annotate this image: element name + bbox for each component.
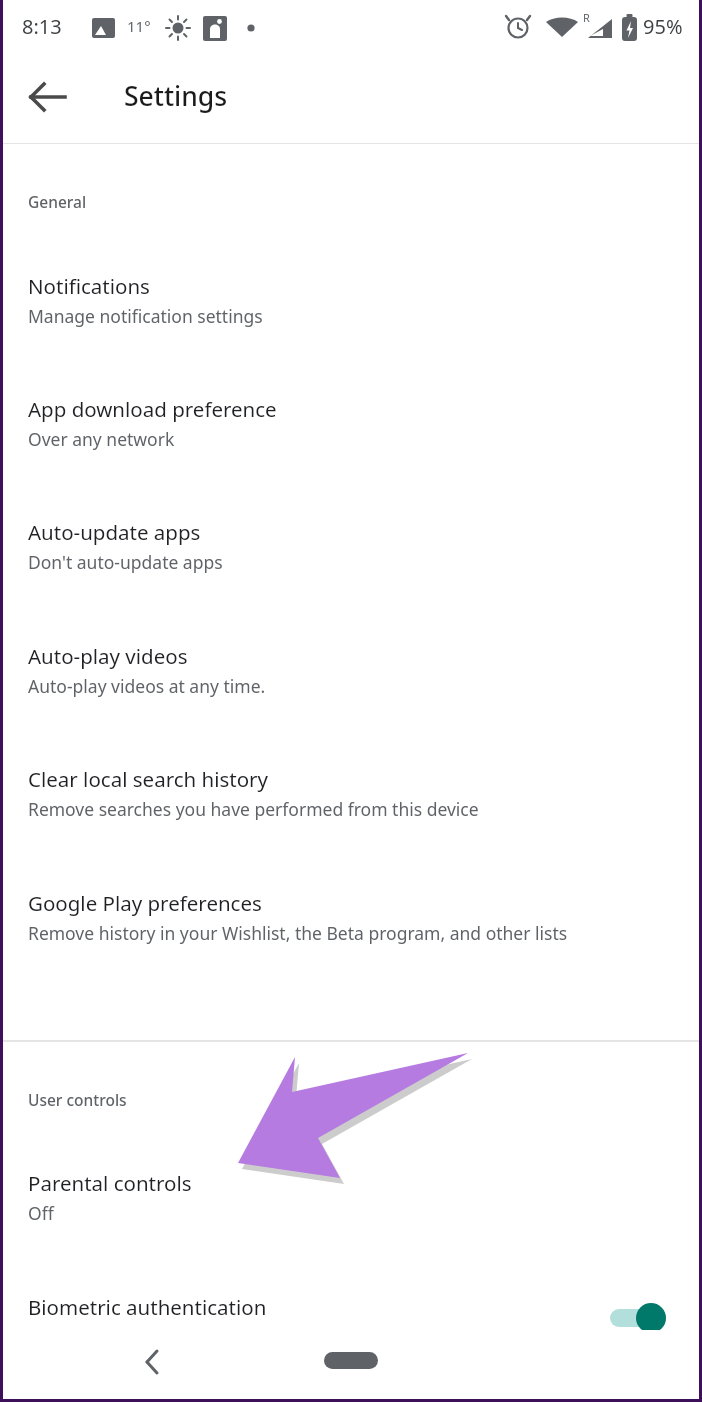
- button[interactable]: Parental controls: [0, 1169, 702, 1241]
- staticText: Manage notification settings: [28, 304, 688, 328]
- staticText: Biometric authentication: [28, 1293, 267, 1321]
- button[interactable]: App download preference: [0, 395, 702, 467]
- button[interactable]: Auto-update apps: [0, 518, 702, 590]
- other: Biometric authentication toggle: [608, 1293, 678, 1337]
- staticText: 11°: [127, 16, 151, 36]
- button[interactable]: Google Play preferences: [0, 889, 702, 989]
- button[interactable]: Notifications: [0, 272, 702, 344]
- staticText: Auto-update apps: [28, 518, 201, 546]
- button[interactable]: Biometric authentication: [0, 1285, 702, 1355]
- staticText: Off: [28, 1201, 688, 1225]
- staticText: Google Play preferences: [28, 889, 262, 917]
- staticText: Remove history in your Wishlist, the Bet…: [28, 921, 678, 945]
- staticText: Clear local search history: [28, 765, 269, 793]
- staticText: 8:13: [22, 13, 62, 40]
- button[interactable]: Home: [324, 1352, 378, 1369]
- staticText: User controls: [28, 1089, 127, 1110]
- staticText: Don't auto-update apps: [28, 550, 688, 574]
- staticText: Remove searches you have performed from …: [28, 797, 688, 821]
- staticText: Settings: [124, 78, 228, 114]
- staticText: Auto-play videos at any time.: [28, 674, 688, 698]
- button[interactable]: Auto-play videos: [0, 642, 702, 714]
- staticText: Notifications: [28, 272, 150, 300]
- staticText: Parental controls: [28, 1169, 192, 1197]
- button[interactable]: Back: [18, 67, 78, 127]
- button[interactable]: Clear local search history: [0, 765, 702, 837]
- button[interactable]: Back: [124, 1334, 180, 1390]
- staticText: Auto-play videos: [28, 642, 188, 670]
- staticText: General: [28, 191, 87, 212]
- staticText: App download preference: [28, 395, 277, 423]
- staticText: 95%: [643, 13, 683, 40]
- staticText: Over any network: [28, 427, 688, 451]
- staticText: R: [583, 10, 590, 25]
